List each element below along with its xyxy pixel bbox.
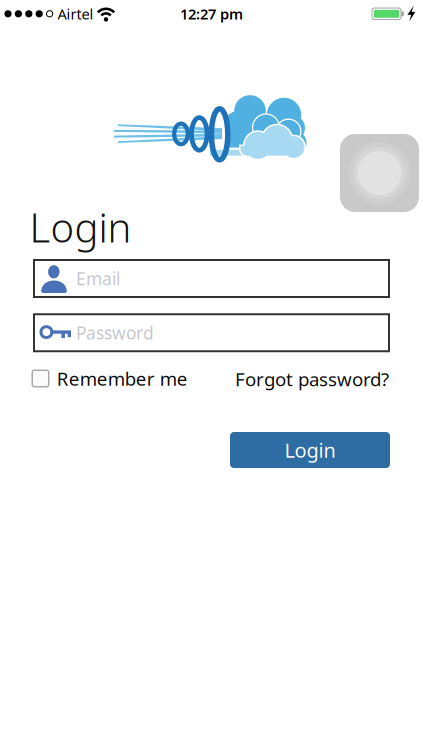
button[interactable]: Email [34,260,389,297]
button[interactable]: Forgot password? [169,367,389,391]
button[interactable] [340,134,419,212]
button[interactable]: Password [34,314,389,351]
button[interactable]: Remember me [32,366,188,391]
button[interactable]: Login [230,432,390,468]
staticText: Remember me [57,366,188,391]
staticText: Login [29,200,131,253]
staticText: Login [284,437,335,463]
staticText: Email [76,267,120,290]
staticText: Forgot password? [235,367,389,391]
staticText: 12:27 pm [180,4,243,24]
staticText: Password [76,321,154,344]
staticText: Airtel [57,4,93,24]
